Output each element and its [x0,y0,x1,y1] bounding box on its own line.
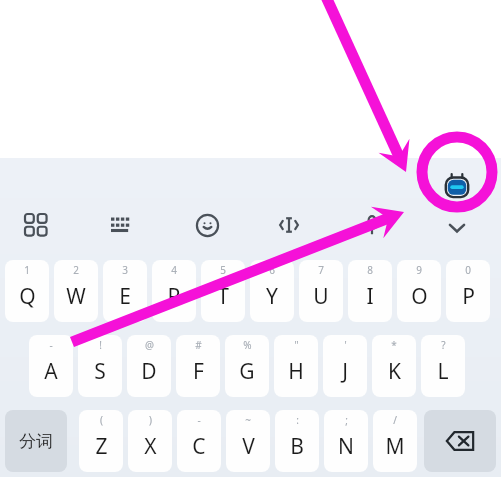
button[interactable]: ? [421,335,465,397]
button[interactable]: 5 [201,260,245,322]
staticText: 6 [269,263,275,277]
staticText: : [296,413,299,427]
button[interactable]: - [29,335,73,397]
staticText: # [195,338,202,352]
button[interactable]: 1 [5,260,49,322]
staticText: @ [145,338,154,352]
staticText: I [366,282,374,311]
staticText: C [192,432,206,461]
button[interactable]: 7 [299,260,343,322]
staticText: - [49,338,53,352]
staticText: G [239,357,255,386]
staticText: 1 [24,263,30,277]
button[interactable]: @ [127,335,171,397]
staticText: U [313,282,329,311]
button[interactable]: ' [323,335,367,397]
staticText: Q [19,282,36,311]
button[interactable]: ) [128,410,172,472]
staticText: F [193,357,204,386]
staticText: N [338,432,354,461]
button[interactable]: # [176,335,220,397]
staticText: J [342,357,348,386]
staticText: V [242,432,255,461]
button[interactable]: ! [78,335,122,397]
button[interactable]: * [372,335,416,397]
button[interactable]: 分词 [5,410,67,472]
staticText: W [66,282,86,311]
button[interactable]: 3 [103,260,147,322]
staticText: K [388,357,401,386]
staticText: " [294,338,299,352]
staticText: - [197,413,201,427]
staticText: ) [149,413,152,427]
staticText: P [462,282,475,311]
staticText: ? [441,338,446,352]
staticText: 5 [220,263,226,277]
button[interactable]: ~ [226,410,270,472]
staticText: X [144,432,157,461]
staticText: B [290,432,304,461]
staticText: M [385,432,405,461]
button[interactable]: ( [79,410,123,472]
staticText: A [44,357,58,386]
staticText: ; [345,413,348,427]
staticText: ! [99,338,102,352]
button[interactable]: ; [324,410,368,472]
button[interactable]: : [275,410,319,472]
button[interactable]: Apps [16,205,56,245]
staticText: H [288,357,304,386]
button[interactable]: Text cursor [269,205,309,245]
staticText: ( [100,413,103,427]
button[interactable]: Keyboard layout [102,205,142,245]
staticText: / [393,413,397,427]
staticText: D [141,357,157,386]
staticText: T [217,282,229,311]
button[interactable]: 8 [348,260,392,322]
staticText: O [411,282,428,311]
staticText: 4 [171,263,177,277]
staticText: 9 [416,263,422,277]
staticText: R [167,282,181,311]
button[interactable]: Hide keyboard [437,208,477,248]
button[interactable]: 4 [152,260,196,322]
staticText: E [119,282,131,311]
button[interactable]: 9 [397,260,441,322]
staticText: ' [344,338,347,352]
staticText: S [94,357,106,386]
staticText: 分词 [19,431,53,452]
button[interactable]: - [177,410,221,472]
button[interactable]: " [274,335,318,397]
button[interactable]: AI assistant [437,167,477,207]
button[interactable]: Emoji [187,205,227,245]
staticText: 0 [465,263,471,277]
staticText: ~ [245,413,251,427]
staticText: % [243,338,252,352]
button[interactable]: % [225,335,269,397]
staticText: 8 [367,263,373,277]
staticText: 7 [318,263,324,277]
button[interactable]: 0 [446,260,490,322]
button[interactable]: Backspace [424,410,496,472]
staticText: 3 [122,263,128,277]
staticText: 2 [73,263,79,277]
button[interactable]: Voice input [352,205,392,245]
staticText: Y [266,282,278,311]
staticText: Z [95,432,108,461]
button[interactable]: 6 [250,260,294,322]
staticText: L [437,357,449,386]
button[interactable]: / [373,410,417,472]
staticText: * [391,338,397,352]
button[interactable]: 2 [54,260,98,322]
